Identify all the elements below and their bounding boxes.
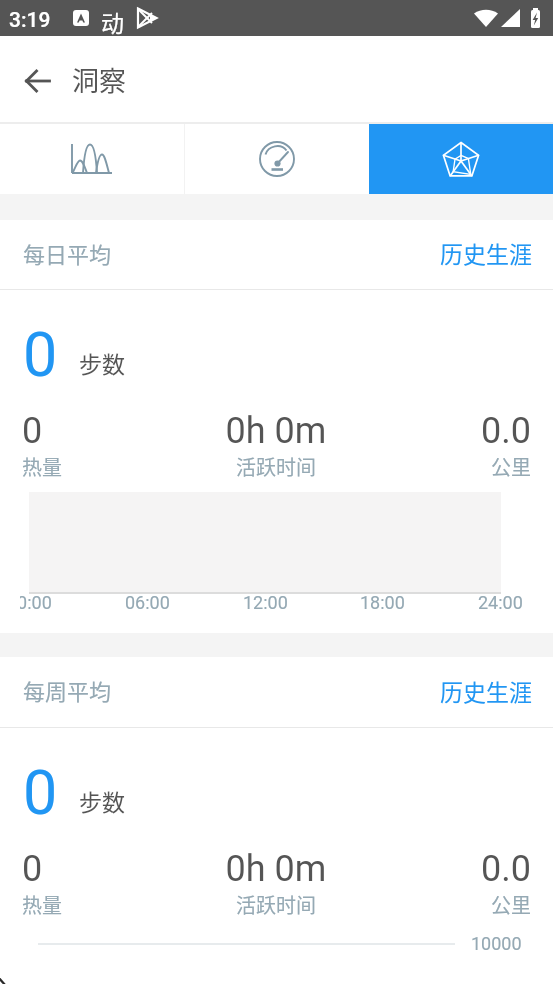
staticText: 0 [23,757,58,828]
staticText: 18:00 [360,592,405,613]
button[interactable]: 历史生涯 [429,666,553,719]
staticText: 公里 [361,452,531,481]
staticText: 历史生涯 [440,674,532,707]
staticText: 动 [101,5,124,38]
button[interactable]: Activity chart tab [0,124,184,194]
button[interactable]: Speed tab [185,124,369,194]
staticText: 热量 [22,452,191,481]
staticText: 3:19 [9,8,51,33]
staticText: 12:00 [243,592,288,613]
staticText: 每日平均 [23,237,112,269]
staticText: 每周平均 [23,674,112,706]
staticText: 洞察 [72,60,126,99]
staticText: 0h 0m [191,410,361,452]
staticText: 活跃时间 [191,890,361,919]
staticText: 步数 [79,784,125,817]
staticText: 0.0 [361,848,531,890]
button[interactable]: Back [14,57,62,105]
staticText: 10000 [471,933,522,954]
staticText: 06:00 [125,592,170,613]
staticText: 活跃时间 [191,452,361,481]
staticText: 24:00 [478,592,523,613]
staticText: 0 [22,848,191,890]
staticText: 0h 0m [191,848,361,890]
staticText: 步数 [79,346,125,379]
staticText: 历史生涯 [440,236,532,269]
staticText: 公里 [361,890,531,919]
staticText: 0 [23,319,58,390]
button[interactable]: Radar tab [369,124,553,194]
staticText: 00:00 [20,592,52,613]
staticText: 0.0 [361,410,531,452]
staticText: 0 [22,410,191,452]
staticText: 热量 [22,890,191,919]
button[interactable]: 历史生涯 [429,228,553,281]
